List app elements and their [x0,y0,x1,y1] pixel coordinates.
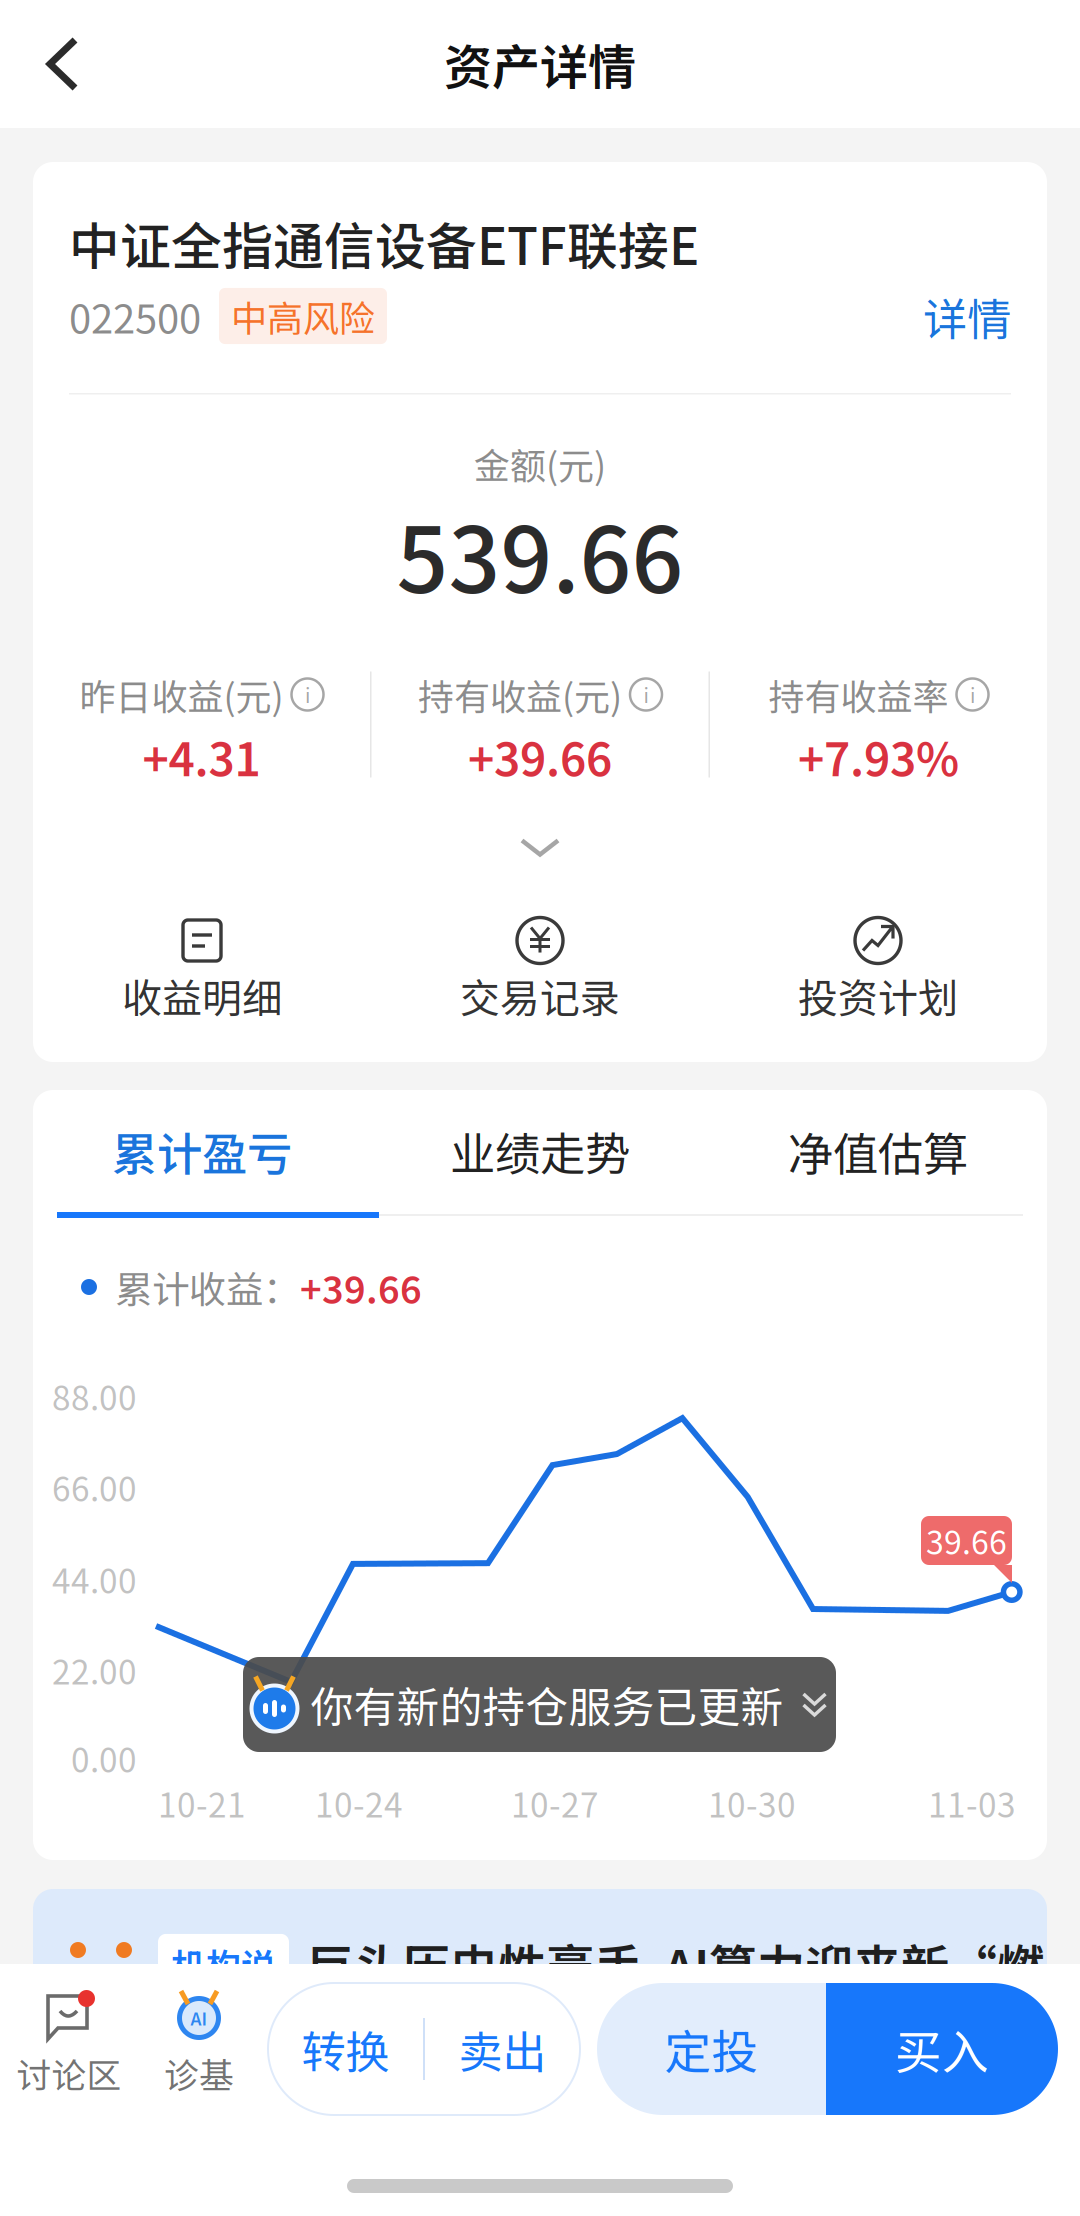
staticText: 诊基 [164,2048,234,2098]
button[interactable]: 累计盈亏 [33,1090,371,1212]
staticText: 转换 [301,2017,389,2081]
staticText: 卖出 [458,2017,546,2081]
button[interactable]: 卖出 [425,1983,580,2115]
button[interactable]: AI [144,1964,254,2124]
staticText: AI [190,2005,207,2031]
staticText: 88.00 [52,1372,137,1420]
staticText: 净值估算 [788,1118,968,1184]
button[interactable]: 买入 [826,1983,1058,2115]
staticText: 金额(元) [474,437,606,489]
staticText: 昨日收益(元) [79,668,283,720]
staticText: i [643,680,648,709]
staticText: 收益明细 [122,966,282,1024]
button[interactable]: 业绩走势 [371,1090,709,1212]
staticText: 持有收益率 [768,668,948,720]
staticText: 你有新的持仓服务已更新 [310,1674,783,1735]
button[interactable]: 讨论区 [14,1964,124,2124]
staticText: 44.00 [52,1555,137,1603]
staticText: i [970,680,975,709]
staticText: 11-03 [928,1779,1016,1827]
staticText: 中高风险 [231,290,375,342]
staticText: 业绩走势 [450,1118,630,1184]
staticText: +4.31 [142,724,260,789]
staticText: 定投 [664,2015,758,2083]
button[interactable]: 交易记录 [371,908,709,1028]
button[interactable]: 净值估算 [709,1090,1047,1212]
button[interactable]: 详情 [923,284,1011,348]
staticText: +39.66 [468,724,612,789]
button[interactable]: 转换 [268,1983,423,2115]
staticText: 10-24 [315,1779,403,1827]
staticText: 39.66 [926,1517,1007,1564]
button[interactable]: 你有新的持仓服务已更新 [243,1657,836,1752]
staticText: 交易记录 [460,966,620,1024]
staticText: 持有收益(元) [418,668,622,720]
staticText: +39.66 [300,1260,422,1314]
staticText: 22.00 [52,1646,137,1694]
button[interactable]: 定投 [597,1983,826,2115]
staticText: 0.00 [71,1734,137,1782]
staticText: 10-21 [158,1779,246,1827]
staticText: 巨头历史性豪手 AI算力迎来新“燃 [306,1929,1045,1999]
staticText: i [305,680,310,709]
staticText: 中证全指通信设备ETF联接E [69,206,699,280]
staticText: 66.00 [52,1463,137,1511]
staticText: 10-27 [511,1779,599,1827]
button[interactable]: 收益明细 [33,908,371,1028]
staticText: 详情 [923,284,1011,348]
staticText: 022500 [69,287,201,345]
button[interactable]: 投资计划 [709,908,1047,1028]
staticText: 累计盈亏 [112,1118,292,1184]
staticText: 投资计划 [798,966,958,1024]
staticText: 累计收益： [115,1260,300,1314]
staticText: +7.93% [798,724,959,789]
staticText: 买入 [895,2015,989,2083]
staticText: 539.66 [396,488,683,619]
button[interactable]: 返回 [0,0,132,128]
button[interactable]: 机构说 [33,1889,1047,2039]
button[interactable]: 展开更多 [519,836,561,858]
staticText: 资产详情 [444,29,636,99]
staticText: 机构说 [171,1939,276,1989]
staticText: 10-30 [708,1779,796,1827]
staticText: 讨论区 [16,2048,121,2098]
